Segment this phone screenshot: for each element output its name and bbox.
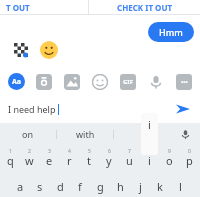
staticText: i [148, 153, 151, 168]
button[interactable]: CHECK IT OUT [89, 0, 200, 14]
button[interactable]: Camera [36, 74, 52, 90]
staticText: p [186, 153, 193, 168]
staticText: d [57, 179, 64, 194]
staticText: 4 [68, 148, 71, 155]
button[interactable]: Emoji picker [92, 74, 108, 90]
staticText: a [17, 179, 24, 194]
button[interactable]: 5 [79, 145, 99, 171]
button[interactable]: Sticker [14, 43, 28, 57]
button[interactable]: g [90, 171, 110, 197]
button[interactable]: GIF [120, 74, 136, 90]
button[interactable]: T OUT [0, 0, 88, 14]
staticText: f [78, 179, 82, 194]
button[interactable]: with [57, 123, 113, 145]
button[interactable]: 7 [119, 145, 139, 171]
staticText: 1 [9, 148, 12, 155]
staticText: 2 [28, 148, 31, 155]
button[interactable]: j [130, 171, 150, 197]
staticText: e [46, 153, 53, 168]
staticText: 0 [188, 148, 191, 155]
button[interactable]: d [50, 171, 70, 197]
button[interactable]: h [110, 171, 130, 197]
button[interactable]: Emoji [40, 41, 58, 59]
button[interactable]: on [0, 123, 56, 145]
button[interactable]: 3 [39, 145, 59, 171]
staticText: w [25, 153, 34, 168]
staticText: with [76, 128, 95, 140]
button[interactable]: l [170, 171, 190, 197]
staticText: 3 [48, 148, 51, 155]
staticText: j [139, 179, 142, 194]
button[interactable]: Send [172, 98, 194, 120]
staticText: ••• [181, 78, 188, 86]
button[interactable]: a [10, 171, 30, 197]
button[interactable]: f [70, 171, 90, 197]
staticText: s [37, 179, 43, 194]
staticText: y [106, 153, 112, 168]
staticText: i [148, 117, 151, 132]
staticText: r [67, 153, 72, 168]
staticText: Hmm [159, 26, 183, 38]
staticText: 6 [108, 148, 111, 155]
staticText: 7 [128, 148, 131, 155]
button[interactable]: 2 [20, 145, 39, 171]
staticText: Aa [12, 77, 22, 87]
button[interactable]: 0 [179, 145, 199, 171]
button[interactable]: 8 [139, 145, 159, 171]
staticText: on [22, 128, 34, 140]
staticText: q [7, 153, 14, 168]
staticText: u [126, 153, 133, 168]
staticText: l [179, 179, 182, 194]
staticText: GIF [123, 78, 133, 86]
button[interactable]: s [30, 171, 50, 197]
staticText: o [166, 153, 173, 168]
staticText: g [97, 179, 104, 194]
staticText: I need help [8, 103, 56, 115]
staticText: k [157, 179, 163, 194]
staticText: t [87, 153, 91, 168]
button[interactable]: i [114, 123, 170, 145]
button[interactable]: Voice [148, 74, 164, 90]
button[interactable]: Hmm [148, 22, 194, 42]
staticText: 5 [88, 148, 91, 155]
staticText: 9 [168, 148, 171, 155]
button[interactable]: Voice input [170, 123, 200, 145]
button[interactable]: 9 [159, 145, 179, 171]
button[interactable]: 1 [1, 145, 20, 171]
button[interactable]: I need help [8, 103, 172, 115]
staticText: h [117, 179, 124, 194]
staticText: CHECK IT OUT [117, 2, 173, 13]
staticText: T OUT [6, 2, 30, 13]
button[interactable]: More options [176, 74, 192, 90]
button[interactable]: Gallery [64, 74, 80, 90]
button[interactable]: Text format [8, 73, 25, 90]
button[interactable]: 4 [59, 145, 79, 171]
button[interactable]: 6 [99, 145, 119, 171]
button[interactable]: k [150, 171, 170, 197]
